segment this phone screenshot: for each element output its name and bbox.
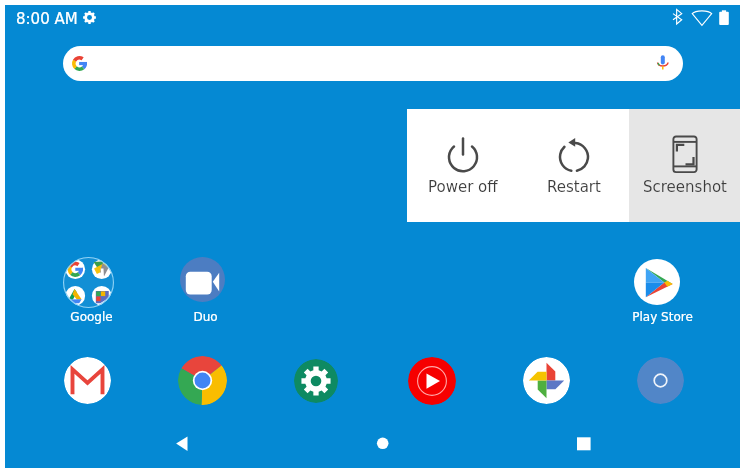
button[interactable]: Home xyxy=(364,425,402,463)
other: Voice search xyxy=(656,55,668,71)
button[interactable]: All apps xyxy=(637,357,684,404)
button[interactable]: Voice search xyxy=(63,46,683,81)
button[interactable]: Restart xyxy=(518,109,629,222)
staticText: Play Store xyxy=(632,310,693,324)
staticText: Restart xyxy=(547,178,601,195)
button[interactable]: Screenshot xyxy=(629,109,740,222)
button[interactable] xyxy=(611,255,703,325)
button[interactable]: Photos xyxy=(523,357,570,404)
staticText: Duo xyxy=(193,310,218,324)
button[interactable]: YouTube Music xyxy=(408,357,456,405)
button[interactable]: Gmail xyxy=(64,357,111,404)
button[interactable]: Chrome xyxy=(178,356,227,405)
button[interactable] xyxy=(157,253,249,323)
button[interactable]: Settings xyxy=(294,359,338,403)
other: Wi-Fi xyxy=(691,9,713,27)
staticText: Screenshot xyxy=(643,178,727,195)
other: Battery xyxy=(718,9,730,27)
button[interactable]: Power off xyxy=(407,109,518,222)
staticText: Power off xyxy=(428,178,498,195)
button[interactable] xyxy=(43,253,135,323)
button[interactable]: Back xyxy=(163,425,201,463)
staticText: Google xyxy=(70,310,113,324)
button[interactable]: Recent apps xyxy=(565,425,603,463)
other: Bluetooth xyxy=(671,8,684,26)
staticText: 8:00 AM xyxy=(16,10,78,27)
